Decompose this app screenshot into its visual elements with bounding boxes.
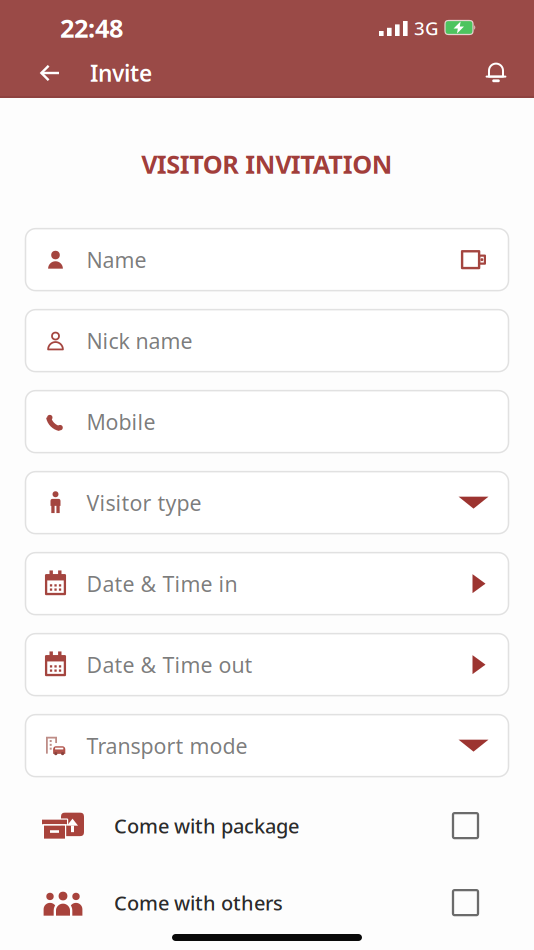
staticText: 3G [414,16,439,40]
button[interactable]: Mobile [25,391,508,453]
button[interactable]: Date & Time out [25,634,508,696]
staticText: Name [86,245,146,274]
button[interactable]: Back [0,61,62,85]
button[interactable]: Visitor type [25,472,508,534]
staticText: Date & Time out [86,650,252,679]
staticText: Date & Time in [86,569,237,598]
button[interactable]: Date & Time in [25,553,508,615]
button[interactable]: Notifications [484,60,534,86]
staticText: Mobile [86,407,155,436]
button[interactable]: Come with package [0,804,534,848]
staticText: Come with package [114,812,299,839]
staticText: Come with others [114,889,283,916]
button[interactable]: Name [25,229,508,291]
staticText: VISITOR INVITATION [141,147,393,181]
staticText: Transport mode [86,731,247,760]
staticText: 22:48 [60,11,123,45]
button[interactable]: Come with others [0,881,534,925]
staticText: Nick name [86,326,192,355]
button[interactable]: Transport mode [25,715,508,777]
staticText: Visitor type [86,488,201,517]
staticText: Invite [90,58,152,88]
button[interactable]: Nick name [25,310,508,372]
